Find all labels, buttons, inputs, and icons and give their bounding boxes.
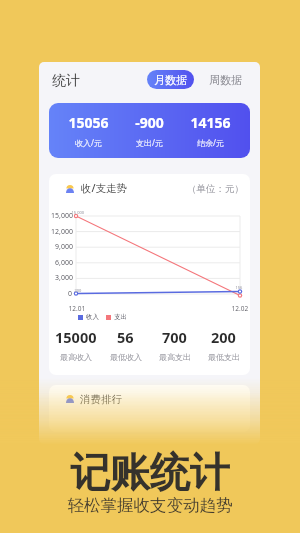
- staticText: 收入: [86, 313, 99, 321]
- staticText: 周数据: [209, 73, 242, 87]
- staticText: 14156: [190, 113, 231, 132]
- button[interactable]: 消费排行: [49, 385, 250, 432]
- staticText: 700: [162, 327, 187, 347]
- button[interactable]: 周数据: [206, 70, 244, 89]
- staticText: 最高支出: [159, 352, 191, 362]
- staticText: 最高收入: [60, 352, 92, 362]
- staticText: 月数据: [154, 73, 187, 87]
- staticText: 轻松掌握收支变动趋势: [0, 495, 300, 516]
- staticText: （单位：元）: [187, 183, 244, 195]
- staticText: 15056: [68, 113, 109, 132]
- staticText: 收入/元: [75, 137, 102, 148]
- staticText: 支出: [114, 313, 127, 321]
- staticText: 统计: [52, 72, 80, 90]
- button[interactable]: 月数据: [147, 70, 194, 89]
- staticText: 消费排行: [80, 393, 122, 406]
- staticText: 最低支出: [208, 352, 240, 362]
- staticText: 记账统计: [0, 447, 300, 497]
- staticText: 支出/元: [136, 137, 163, 148]
- staticText: 200: [211, 327, 236, 347]
- staticText: 最低收入: [110, 352, 142, 362]
- staticText: 结余/元: [197, 137, 224, 148]
- staticText: 收/支走势: [81, 181, 128, 195]
- staticText: -900: [135, 113, 164, 132]
- staticText: 56: [117, 327, 134, 347]
- staticText: 15000: [55, 327, 97, 347]
